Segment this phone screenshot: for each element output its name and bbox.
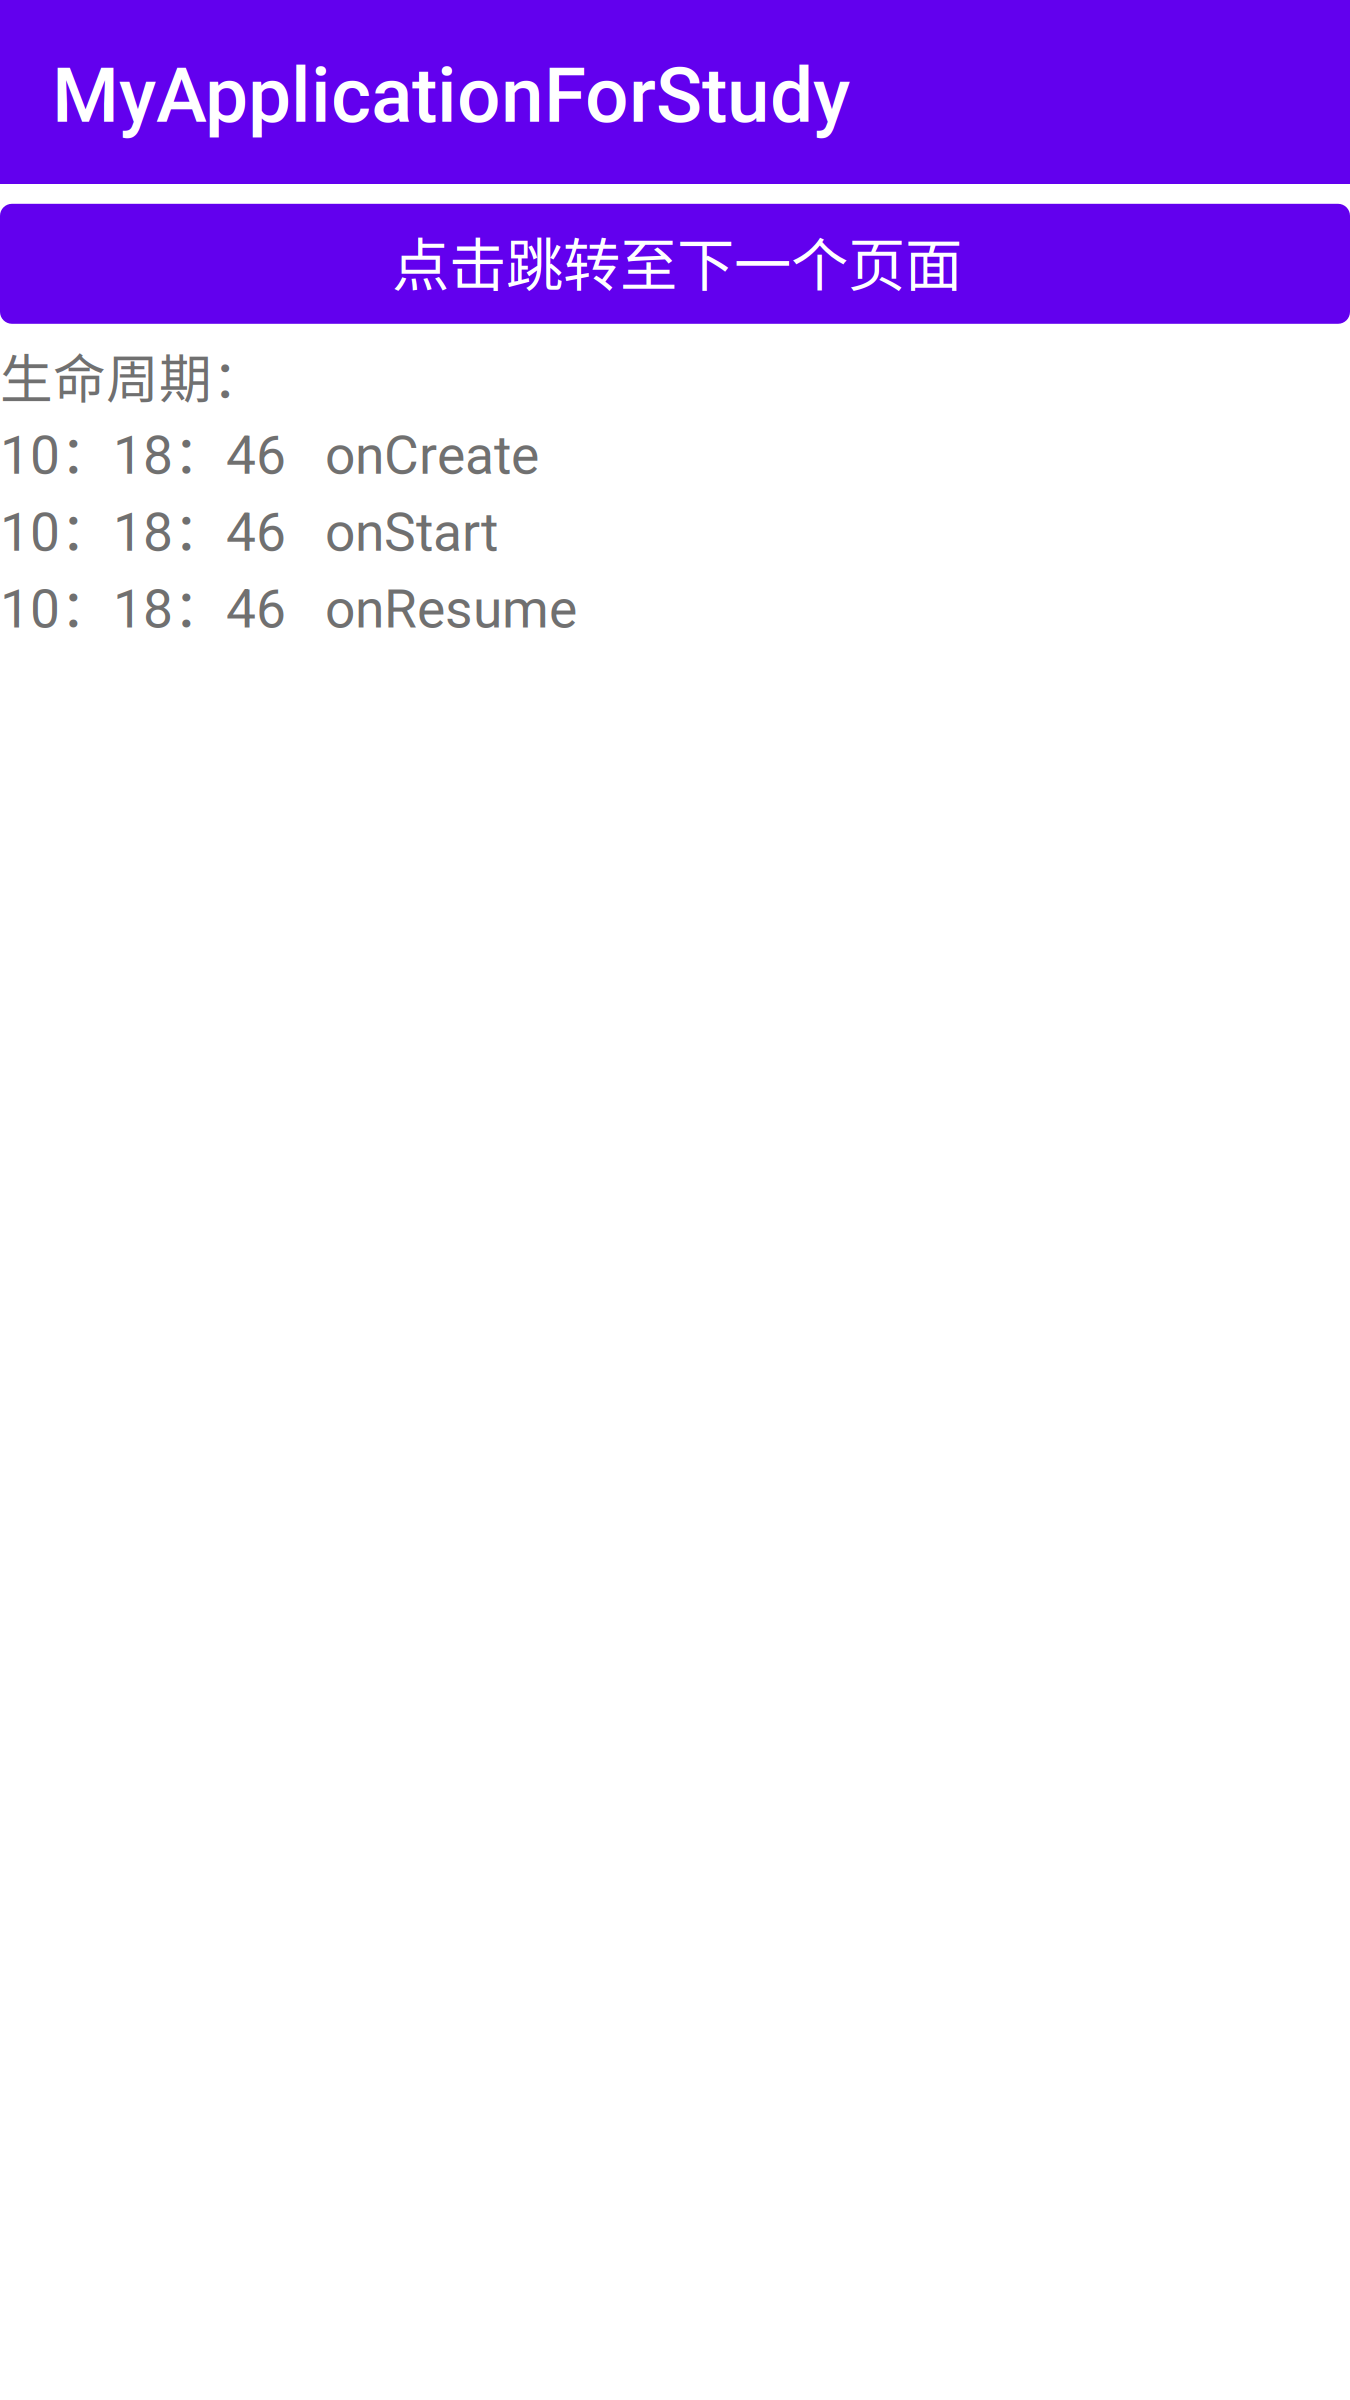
staticText: 10：18：46 onCreate [0,413,539,488]
staticText: 点击跳转至下一个页面 [392,219,962,302]
button[interactable]: 点击跳转至下一个页面 [0,204,1350,324]
staticText: MyApplicationForStudy [52,51,850,140]
staticText: 10：18：46 onStart [0,490,498,565]
staticText: 生命周期： [0,337,265,413]
staticText: 10：18：46 onResume [0,567,577,642]
